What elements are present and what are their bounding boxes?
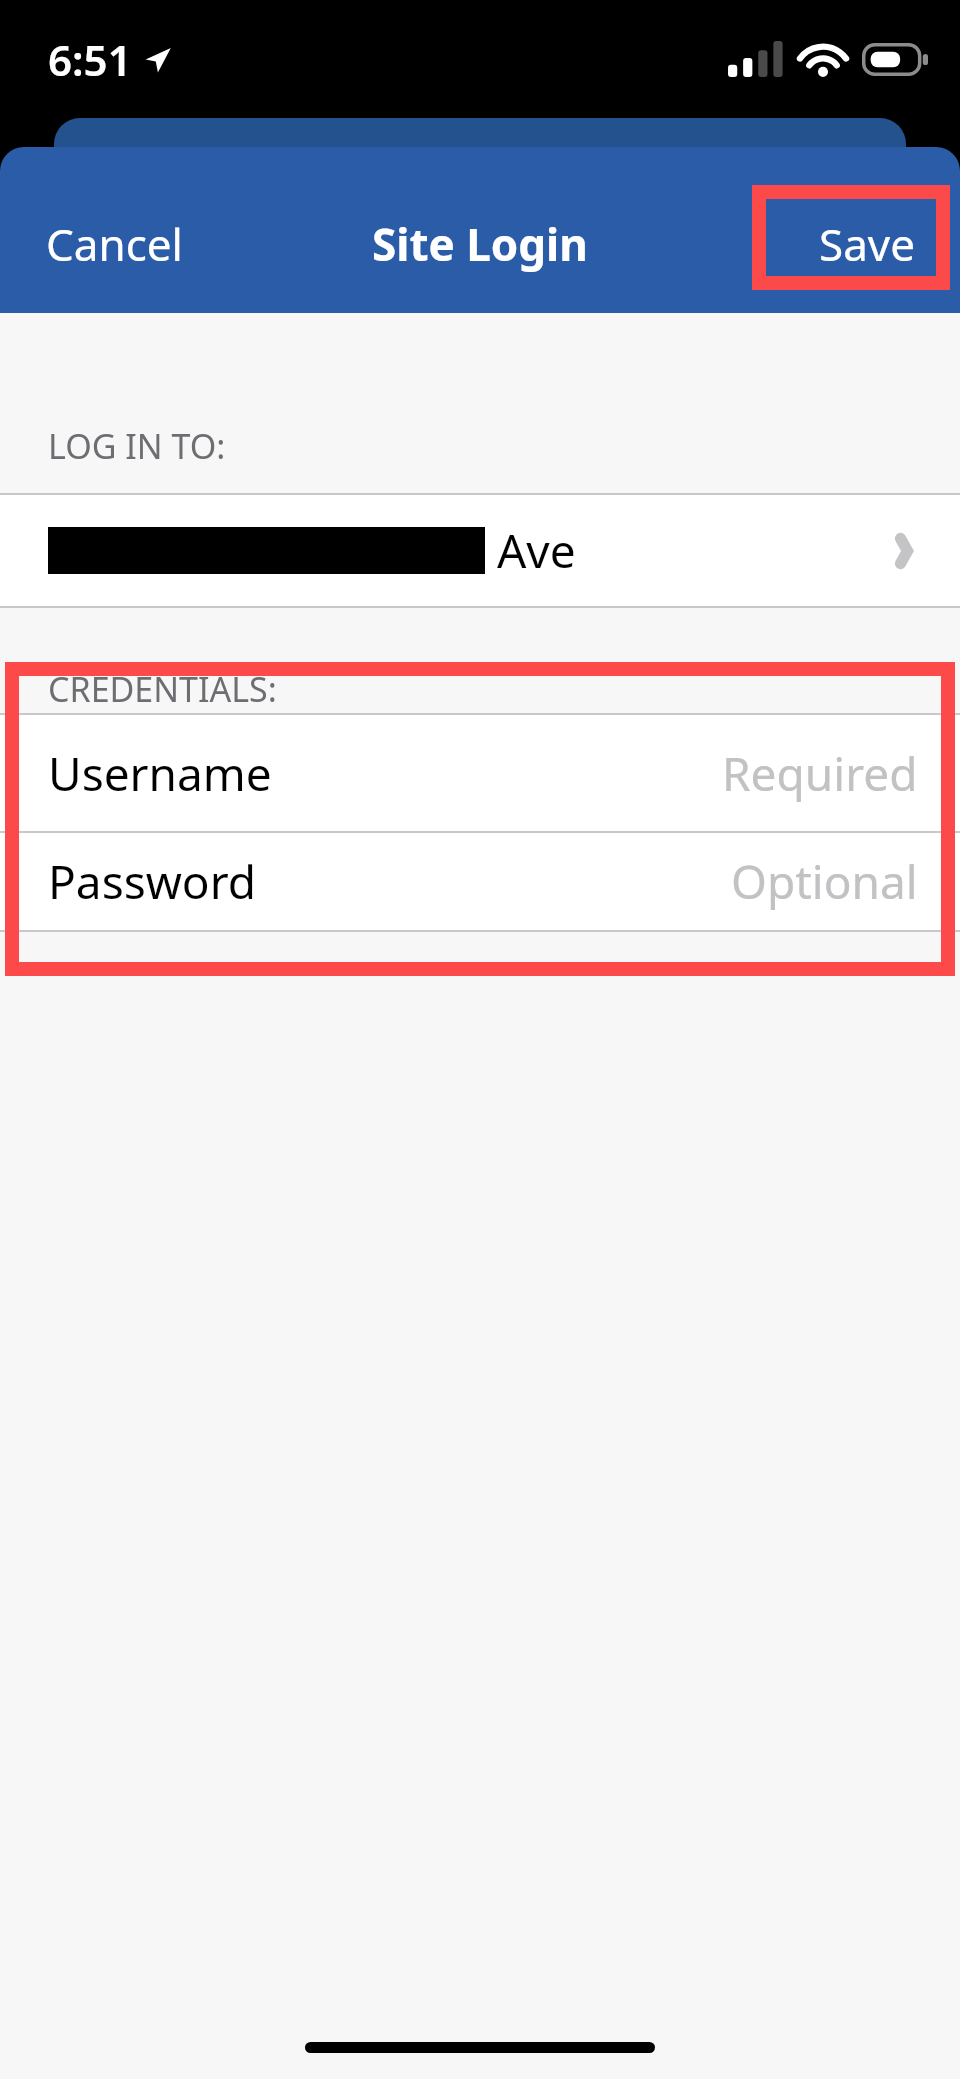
staticText: 6:51 bbox=[48, 31, 132, 88]
button[interactable]: Username bbox=[0, 715, 960, 831]
staticText: Cancel bbox=[46, 214, 183, 274]
button[interactable]: Password bbox=[0, 833, 960, 930]
staticText: Save bbox=[819, 214, 916, 274]
staticText: Optional bbox=[731, 850, 918, 913]
button[interactable]: Cancel bbox=[20, 200, 209, 288]
staticText: Required bbox=[722, 742, 918, 805]
staticText: Username bbox=[48, 742, 272, 805]
staticText: Password bbox=[48, 850, 257, 913]
staticText: CREDENTIALS: bbox=[48, 666, 277, 712]
button[interactable]: Save bbox=[797, 200, 938, 288]
staticText: Ave bbox=[485, 519, 576, 582]
staticText: Site Login bbox=[372, 214, 588, 274]
staticText: LOG IN TO: bbox=[48, 423, 226, 469]
button[interactable]: Ave bbox=[0, 495, 960, 606]
